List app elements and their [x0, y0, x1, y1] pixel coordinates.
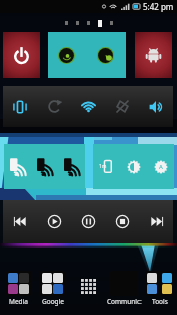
button[interactable]: Android — [135, 32, 172, 78]
button[interactable]: Media — [6, 271, 31, 296]
button[interactable]: Brightness — [147, 144, 174, 189]
staticText: Tools — [152, 297, 168, 306]
staticText: A — [159, 163, 163, 171]
button[interactable]: Stop — [105, 200, 139, 243]
button[interactable]: Sync — [37, 86, 71, 127]
button[interactable]: Mobile data — [31, 144, 58, 189]
button[interactable]: All apps — [81, 279, 96, 294]
button[interactable]: Vibrate — [3, 86, 37, 127]
button[interactable]: Power — [3, 32, 40, 78]
button[interactable]: Hotspot — [58, 144, 85, 189]
button[interactable]: Auto rotate — [105, 86, 139, 127]
button[interactable]: Contrast — [120, 144, 147, 189]
staticText: Google — [42, 297, 64, 306]
button[interactable]: Wi-Fi settings — [4, 144, 31, 189]
button[interactable]: Screen timeout — [93, 144, 120, 189]
button[interactable]: Tools — [145, 271, 174, 296]
staticText: 5:42 pm — [143, 1, 174, 12]
button[interactable]: Google — [40, 271, 65, 296]
staticText: Media — [9, 297, 28, 306]
button[interactable]: Apps — [48, 32, 126, 78]
button[interactable]: Wi-Fi — [71, 86, 105, 127]
button[interactable]: Pause — [71, 200, 105, 243]
button[interactable]: Volume — [139, 86, 173, 127]
button[interactable]: Next — [139, 200, 173, 243]
button[interactable]: Previous — [3, 200, 37, 243]
staticText: Communic: — [107, 297, 142, 306]
staticText: 1m — [99, 163, 107, 170]
button[interactable]: Play — [37, 200, 71, 243]
